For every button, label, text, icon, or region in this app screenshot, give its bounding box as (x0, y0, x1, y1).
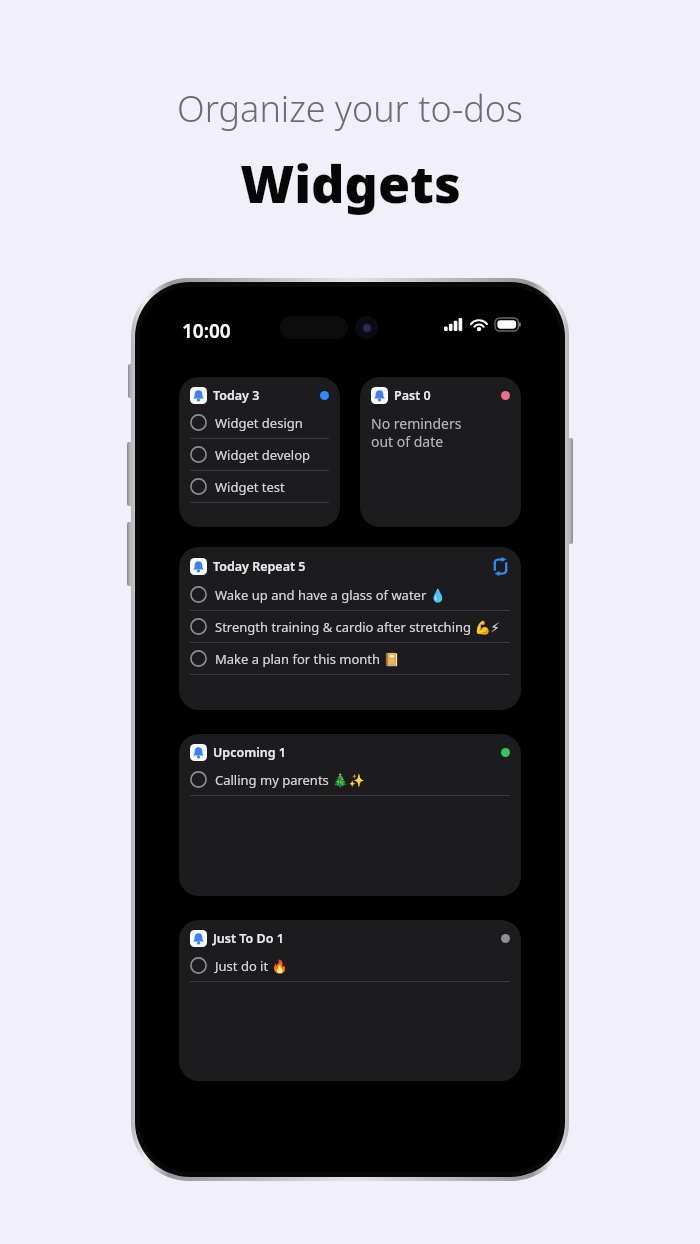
staticText: Widget test (215, 478, 285, 496)
staticText: Widget develop (215, 446, 311, 464)
staticText: Make a plan for this month 📔 (215, 650, 400, 668)
staticText: Past 0 (394, 387, 431, 404)
staticText: Just To Do 1 (213, 930, 284, 947)
button[interactable]: Just do it 🔥 (190, 950, 510, 981)
staticText: Just do it 🔥 (215, 957, 288, 975)
button[interactable]: Upcoming 1 (179, 734, 521, 896)
staticText: Widget design (215, 414, 303, 432)
staticText: Strength training & cardio after stretch… (215, 618, 500, 636)
button[interactable]: Make a plan for this month 📔 (190, 643, 510, 674)
button[interactable]: Just To Do 1 (179, 920, 521, 1081)
button[interactable]: Widget test (190, 471, 329, 502)
button[interactable]: Strength training & cardio after stretch… (190, 611, 510, 642)
staticText: Organize your to-dos (177, 84, 523, 133)
staticText: Calling my parents 🎄✨ (215, 771, 365, 789)
staticText: Widgets (240, 147, 461, 218)
button[interactable]: Past 0 (360, 377, 521, 527)
button[interactable]: Wake up and have a glass of water 💧 (190, 579, 510, 610)
staticText: Today Repeat 5 (213, 558, 306, 575)
other: Repeat (491, 557, 510, 576)
button[interactable]: Calling my parents 🎄✨ (190, 764, 510, 795)
button[interactable]: Widget design (190, 407, 329, 438)
staticText: Wake up and have a glass of water 💧 (215, 586, 446, 604)
staticText: 10:00 (182, 318, 231, 344)
staticText: No reminders out of date (371, 414, 462, 451)
button[interactable]: Today 3 (179, 377, 340, 527)
button[interactable]: Today Repeat 5 (179, 547, 521, 710)
staticText: Today 3 (213, 387, 260, 404)
button[interactable]: Widget develop (190, 439, 329, 470)
staticText: Upcoming 1 (213, 744, 286, 761)
